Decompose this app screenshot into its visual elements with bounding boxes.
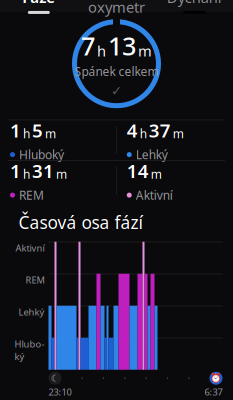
staticText: REM xyxy=(19,187,44,203)
button[interactable]: Dýchání xyxy=(155,0,233,14)
staticText: 13 xyxy=(108,29,136,62)
staticText: m xyxy=(173,126,184,142)
staticText: Aktivní xyxy=(15,242,44,254)
button[interactable]: Fáze xyxy=(0,0,78,14)
staticText: ⏰ xyxy=(210,373,222,384)
staticText: ✓ xyxy=(111,83,122,98)
staticText: Časová osa fází xyxy=(18,211,142,234)
staticText: m xyxy=(45,126,56,142)
staticText: Spánek celkem xyxy=(74,63,158,79)
staticText: h xyxy=(97,41,106,60)
staticText: Lehký xyxy=(136,147,168,162)
staticText: Aktivní xyxy=(136,187,173,203)
staticText: m xyxy=(138,41,152,60)
staticText: 1 xyxy=(10,118,21,143)
staticText: m xyxy=(151,166,162,182)
staticText: Hluboký xyxy=(19,147,64,162)
staticText: 4 xyxy=(127,118,138,143)
staticText: Pulzní oxymetr xyxy=(88,0,145,17)
staticText: Hluboký xyxy=(14,338,44,362)
staticText: 6:37 xyxy=(204,386,222,398)
staticText: 5 xyxy=(32,118,43,143)
staticText: 31 xyxy=(32,158,54,183)
staticText: 7 xyxy=(81,29,95,62)
staticText: 1 xyxy=(10,158,21,183)
staticText: Dýchání xyxy=(167,0,222,7)
staticText: h xyxy=(23,126,30,142)
staticText: 23:10 xyxy=(48,386,71,398)
staticText: Fáze xyxy=(22,0,55,7)
staticText: h xyxy=(140,126,147,142)
staticText: m xyxy=(56,166,67,182)
staticText: ☾ xyxy=(51,373,59,383)
staticText: h xyxy=(23,166,30,182)
staticText: 37 xyxy=(149,118,171,143)
staticText: Lehký xyxy=(18,306,44,318)
button[interactable]: Pulzní oxymetr xyxy=(78,0,155,24)
staticText: REM xyxy=(25,274,44,286)
staticText: 14 xyxy=(127,158,149,183)
